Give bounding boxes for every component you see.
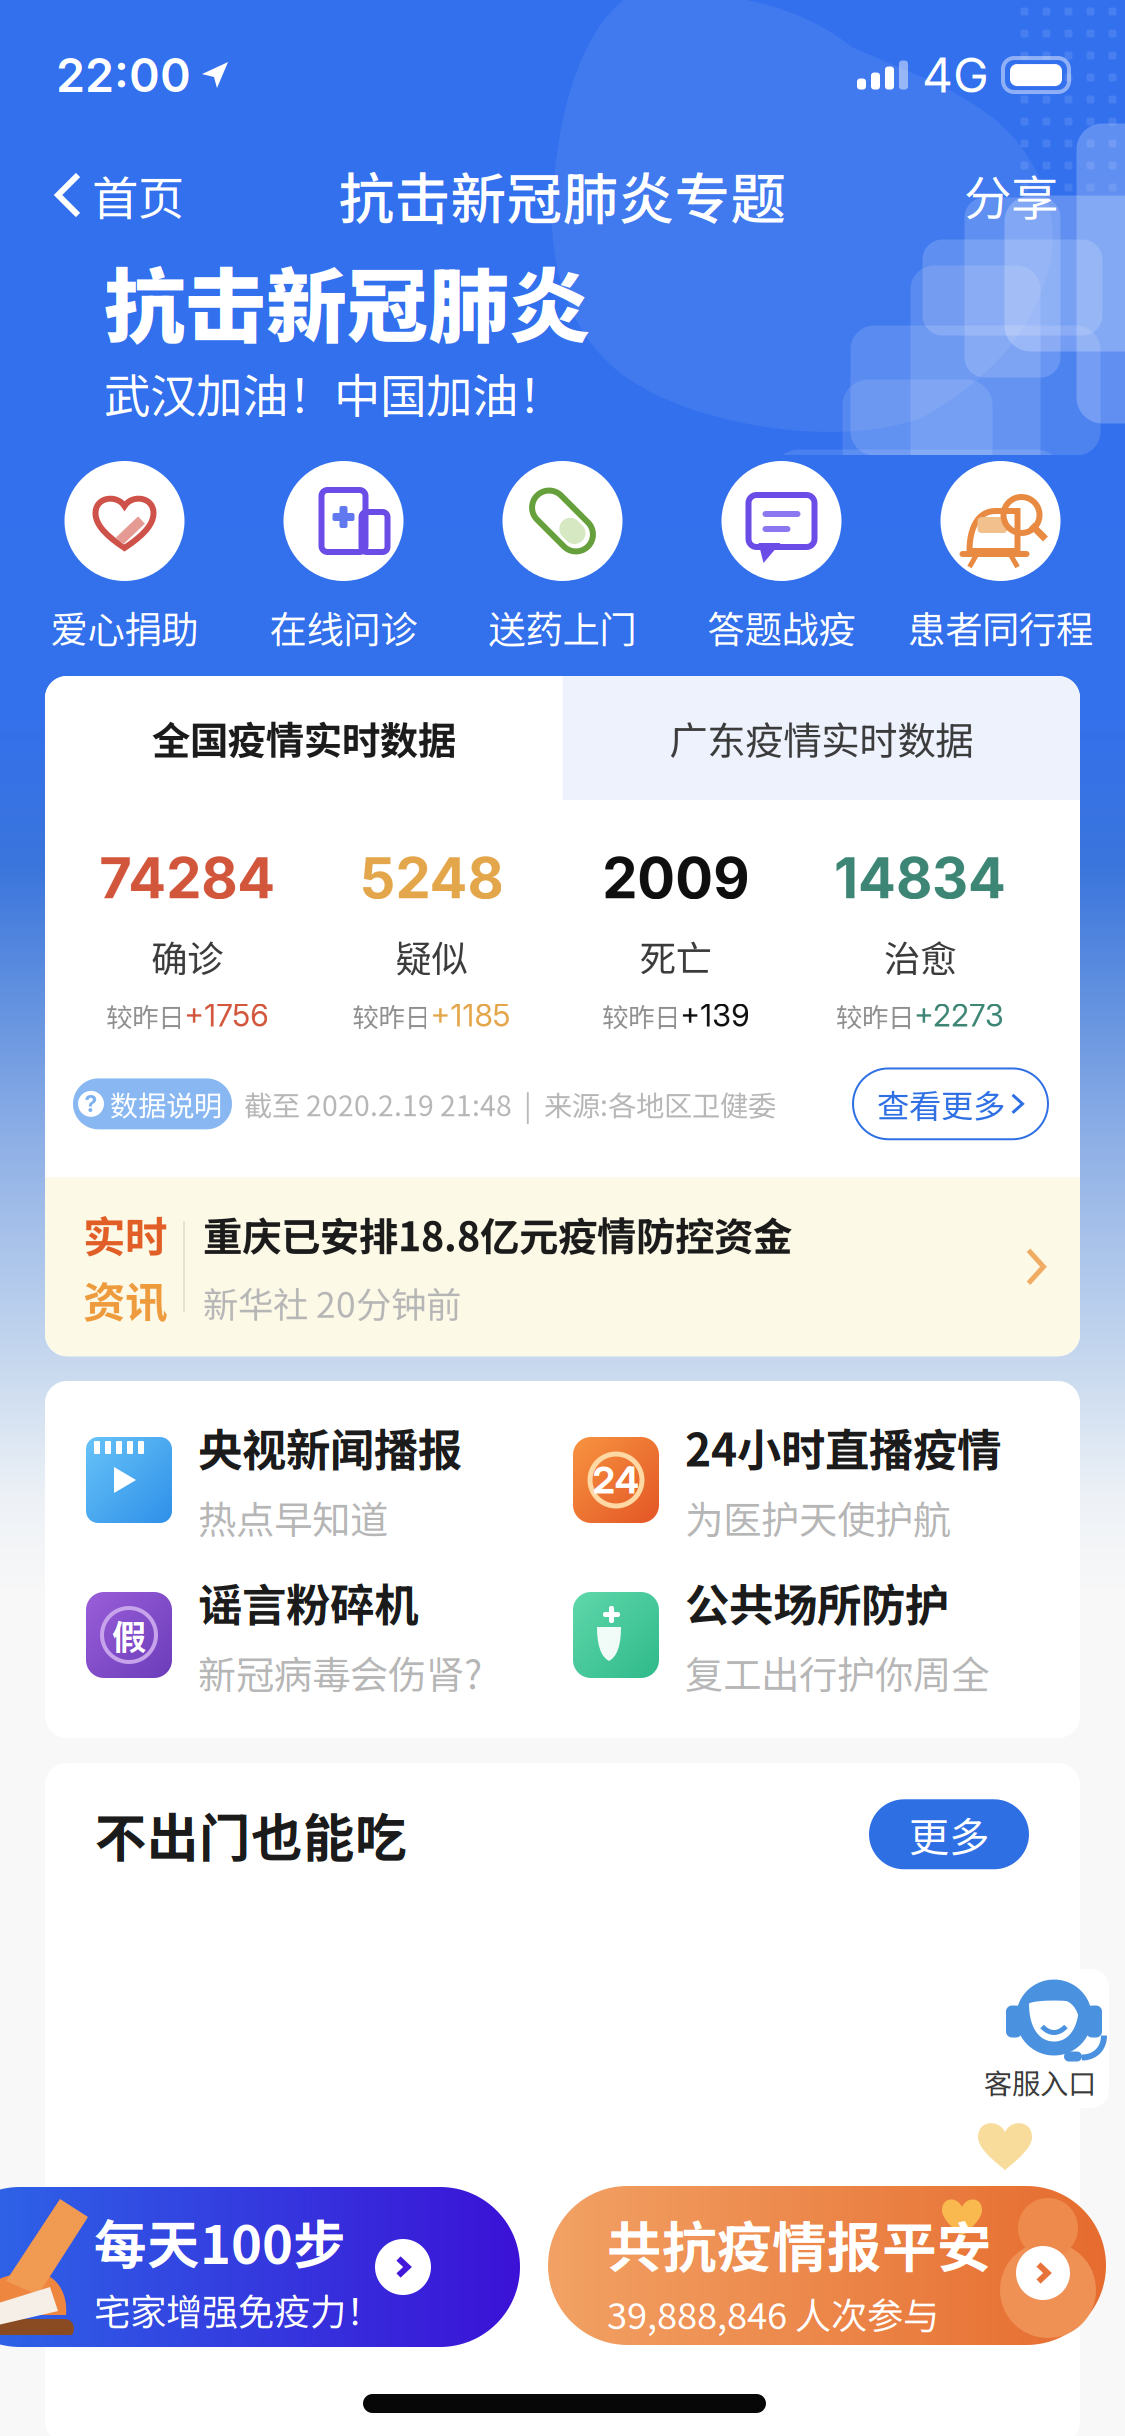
staticText: ?: [84, 1090, 97, 1117]
button[interactable]: 广东疫情实时数据: [562, 676, 1080, 800]
staticText: 广东疫情实时数据: [669, 710, 973, 766]
staticText: 74284: [99, 844, 275, 912]
button[interactable]: 24: [573, 1415, 1060, 1545]
button[interactable]: 公共场所防护: [573, 1570, 1060, 1700]
staticText: 5248: [359, 844, 503, 912]
staticText: 实时: [83, 1203, 167, 1265]
staticText: 分享: [964, 161, 1058, 229]
staticText: 查看更多: [877, 1080, 1005, 1127]
button[interactable]: 首页: [44, 151, 194, 239]
staticText: 4G: [922, 46, 989, 104]
button[interactable]: 更多: [869, 1799, 1029, 1869]
staticText: 患者同行程: [908, 600, 1093, 654]
staticText: 更多: [909, 1805, 989, 1863]
staticText: 确诊: [151, 930, 223, 982]
staticText: 24: [592, 1457, 639, 1503]
staticText: 爱心捐助: [50, 600, 198, 654]
staticText: +2273: [914, 997, 1004, 1034]
button[interactable]: 全国疫情实时数据: [45, 676, 562, 800]
staticText: 答题战疫: [707, 600, 855, 654]
staticText: 22:00: [56, 47, 191, 103]
button[interactable]: 实时: [45, 1177, 1080, 1356]
staticText: 送药上门: [488, 600, 636, 654]
button[interactable]: 查看更多: [853, 1068, 1048, 1139]
staticText: 共抗疫情报平安: [607, 2204, 992, 2283]
button[interactable]: 在线问诊: [244, 461, 443, 654]
button[interactable]: 央视新闻播报: [86, 1415, 573, 1545]
staticText: 全国疫情实时数据: [152, 710, 456, 766]
staticText: 疑似: [395, 930, 467, 982]
button[interactable]: 假: [86, 1570, 573, 1700]
staticText: 抗击新冠肺炎: [104, 242, 590, 359]
staticText: 新冠病毒会伤肾?: [198, 1644, 482, 1700]
staticText: 假: [112, 1610, 146, 1660]
staticText: 在线问诊: [269, 600, 417, 654]
staticText: 较昨日: [836, 996, 914, 1034]
button[interactable]: 答题战疫: [682, 461, 881, 654]
staticText: 较昨日: [352, 996, 430, 1034]
staticText: 24小时直播疫情: [685, 1415, 1001, 1479]
staticText: 2009: [602, 844, 749, 912]
staticText: 武汉加油！中国加油！: [104, 359, 564, 426]
staticText: 为医护天使护航: [685, 1489, 951, 1545]
staticText: 14834: [834, 844, 1006, 912]
staticText: 首页: [92, 161, 184, 229]
staticText: 谣言粉碎机: [198, 1570, 418, 1634]
button[interactable]: 每天100步: [0, 2187, 520, 2347]
staticText: 资讯: [83, 1269, 167, 1330]
staticText: 较昨日: [602, 996, 680, 1034]
button[interactable]: 患者同行程: [901, 461, 1100, 654]
button[interactable]: 共抗疫情报平安: [548, 2186, 1106, 2345]
staticText: +139: [680, 997, 749, 1034]
staticText: 客服入口: [984, 2061, 1096, 2102]
staticText: 较昨日: [106, 996, 184, 1034]
button[interactable]: 分享: [954, 151, 1068, 239]
button[interactable]: 客服入口: [971, 1969, 1109, 2108]
staticText: 每天100步: [94, 2203, 346, 2279]
staticText: 截至 2020.2.19 21:48 | 来源:各地区卫健委: [244, 1083, 776, 1124]
staticText: 重庆已安排18.8亿元疫情防控资金: [203, 1206, 792, 1263]
staticText: 公共场所防护: [685, 1570, 949, 1634]
staticText: 复工出行护你周全: [685, 1644, 989, 1700]
staticText: 央视新闻播报: [198, 1415, 462, 1479]
staticText: 热点早知道: [198, 1489, 388, 1545]
staticText: 宅家增强免疫力！: [94, 2283, 382, 2336]
staticText: 数据说明: [110, 1083, 222, 1124]
staticText: 抗击新冠肺炎专题: [338, 155, 786, 235]
button[interactable]: 送药上门: [463, 461, 662, 654]
staticText: 治愈: [884, 930, 956, 982]
staticText: 死亡: [640, 930, 712, 982]
staticText: 39,888,846 人次参与: [607, 2287, 939, 2340]
staticText: 不出门也能吃: [95, 1797, 407, 1872]
staticText: 新华社 20分钟前: [203, 1277, 461, 1328]
staticText: +1185: [430, 997, 510, 1034]
staticText: +1756: [184, 997, 268, 1034]
button[interactable]: 爱心捐助: [25, 461, 224, 654]
